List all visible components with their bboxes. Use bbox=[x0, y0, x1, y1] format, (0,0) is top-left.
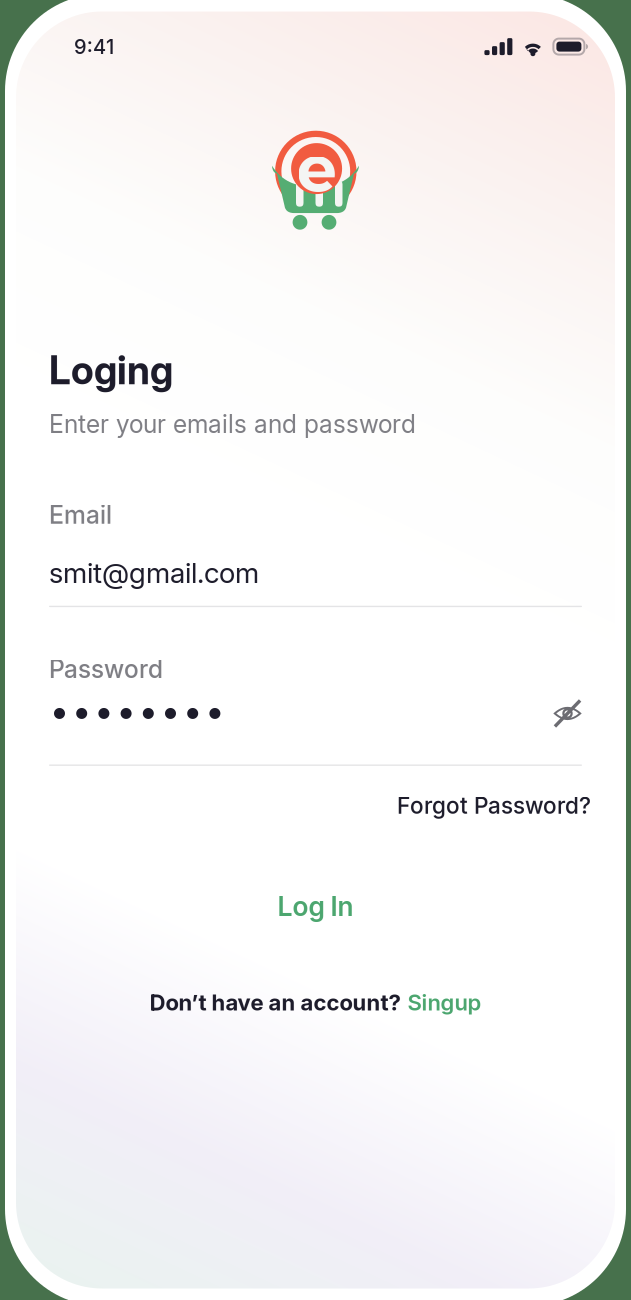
staticText: Singup bbox=[407, 989, 481, 1016]
staticText: smit@gmail.com bbox=[49, 556, 259, 590]
button[interactable]: Show password bbox=[553, 700, 582, 727]
staticText: Email bbox=[49, 500, 112, 530]
button[interactable]: Log In bbox=[49, 890, 582, 922]
staticText: Log In bbox=[277, 890, 353, 922]
button[interactable]: Forgot Password? bbox=[397, 792, 591, 819]
staticText: 9:41 bbox=[74, 34, 114, 59]
staticText: Don’t have an account? bbox=[149, 989, 400, 1016]
button[interactable]: Don’t have an account? bbox=[49, 989, 582, 1016]
staticText: Loging bbox=[49, 347, 173, 393]
staticText: Enter your emails and password bbox=[49, 409, 416, 439]
staticText: Forgot Password? bbox=[397, 792, 591, 819]
staticText: e bbox=[297, 130, 337, 208]
staticText: Password bbox=[49, 654, 163, 684]
